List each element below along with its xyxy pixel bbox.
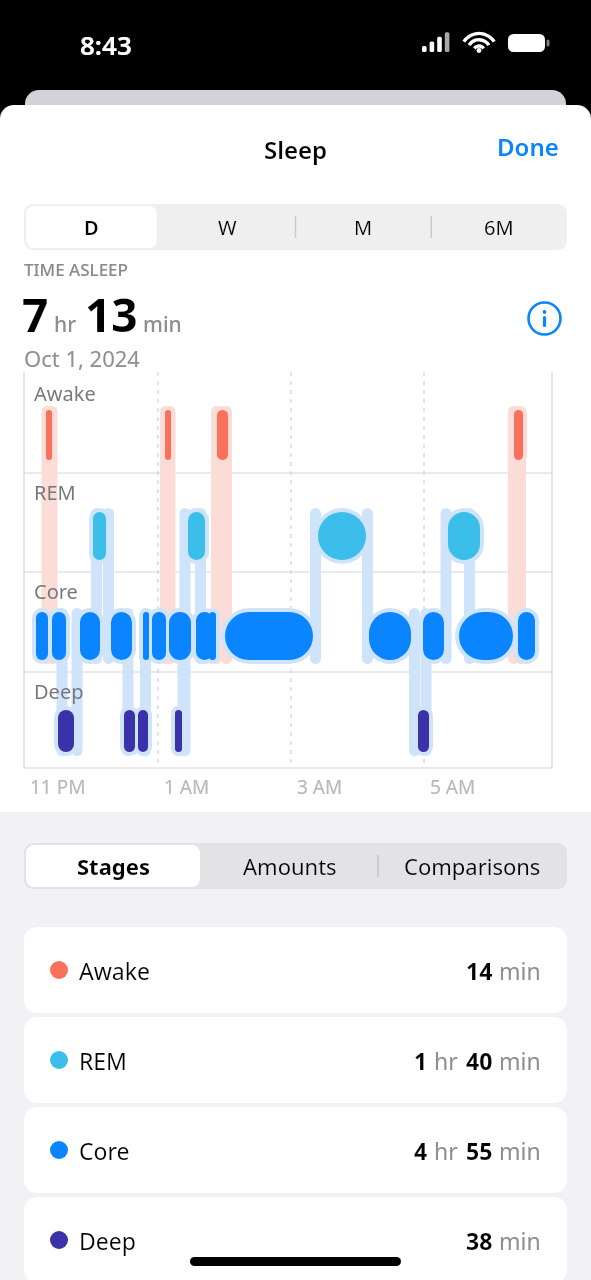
button[interactable]: Comparisons [378, 843, 567, 889]
staticText: 55 [466, 1135, 493, 1166]
staticText: 3 AM [297, 774, 343, 800]
staticText: hr [434, 1135, 458, 1166]
staticText: 14 [466, 955, 493, 986]
button[interactable]: Done [488, 123, 568, 169]
staticText: 40 [466, 1045, 493, 1076]
staticText: REM [34, 479, 76, 506]
button[interactable]: Stages [24, 843, 202, 889]
staticText: REM [79, 1045, 127, 1076]
staticText: Done [497, 130, 559, 163]
staticText: Comparisons [404, 851, 541, 881]
staticText: Awake [34, 380, 96, 407]
staticText: 13 [85, 283, 138, 346]
staticText: Stages [77, 851, 150, 881]
staticText: min [143, 310, 182, 339]
button[interactable]: 6M [431, 204, 567, 250]
staticText: 1 [414, 1045, 428, 1076]
staticText: min [499, 1135, 541, 1166]
staticText: Core [79, 1135, 130, 1166]
staticText: Oct 1, 2024 [24, 343, 140, 373]
staticText: W [218, 214, 237, 241]
button[interactable]: REM [24, 1017, 567, 1103]
staticText: 38 [466, 1225, 493, 1256]
staticText: Amounts [243, 851, 337, 881]
staticText: Sleep [0, 133, 591, 166]
staticText: 1 AM [164, 774, 210, 800]
staticText: 4 [414, 1135, 428, 1166]
staticText: hr [54, 310, 77, 339]
staticText: Core [34, 578, 78, 605]
staticText: 8:43 [80, 27, 132, 62]
staticText: min [499, 1225, 541, 1256]
staticText: M [354, 214, 373, 241]
staticText: min [499, 955, 541, 986]
button[interactable]: Core [24, 1107, 567, 1193]
staticText: 7 [22, 283, 49, 346]
button[interactable]: W [159, 204, 295, 250]
staticText: TIME ASLEEP [24, 258, 128, 281]
staticText: hr [434, 1045, 458, 1076]
staticText: Awake [79, 955, 150, 986]
button[interactable]: D [24, 204, 159, 250]
staticText: Deep [79, 1225, 136, 1256]
staticText: 6M [484, 214, 514, 241]
staticText: Deep [34, 678, 84, 705]
button[interactable]: M [295, 204, 431, 250]
staticText: D [84, 214, 99, 241]
button[interactable]: Deep [24, 1197, 567, 1280]
staticText: 11 PM [30, 774, 86, 800]
button[interactable]: About time asleep [522, 296, 566, 340]
staticText: 5 AM [430, 774, 476, 800]
button[interactable]: Amounts [202, 843, 378, 889]
button[interactable]: Awake [24, 927, 567, 1013]
staticText: min [499, 1045, 541, 1076]
